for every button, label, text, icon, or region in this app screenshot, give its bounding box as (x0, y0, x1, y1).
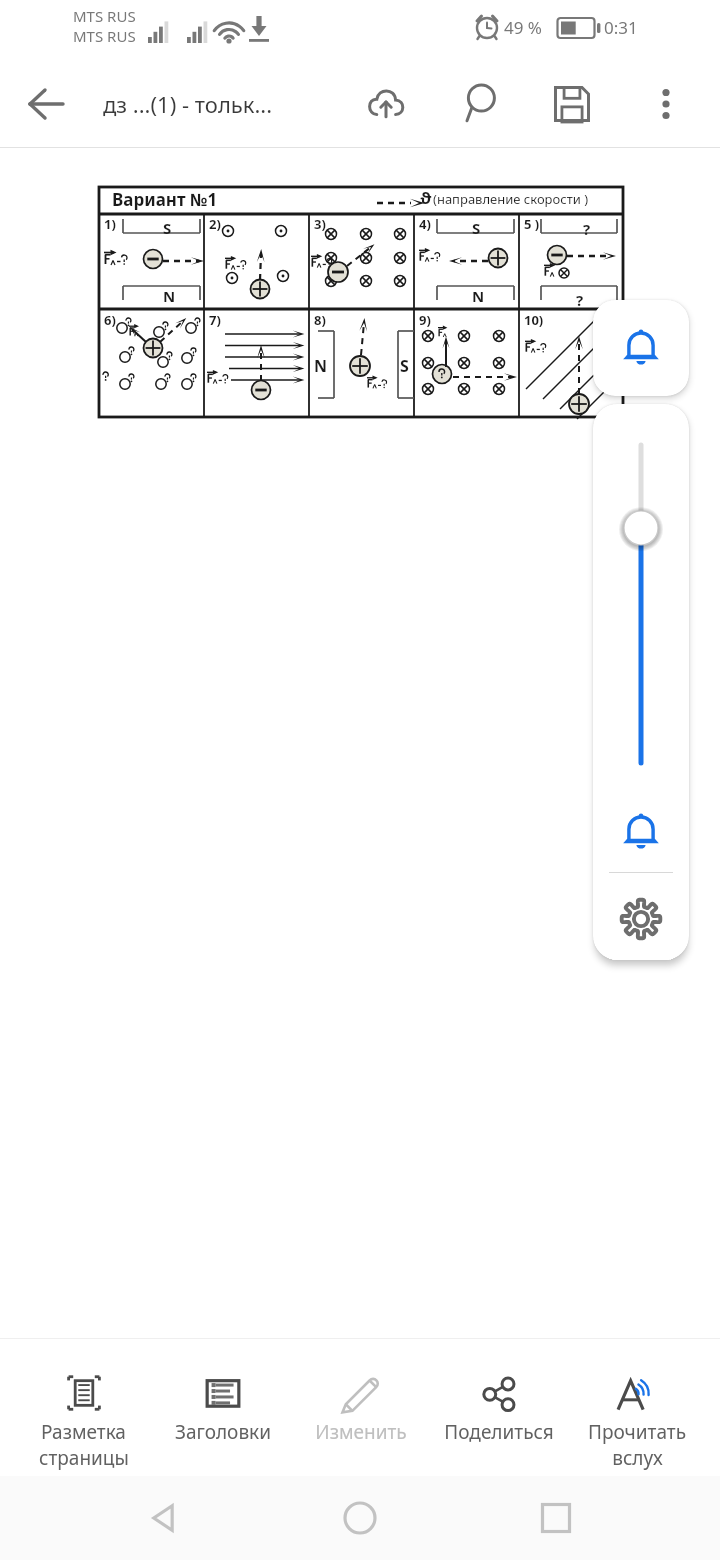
staticText: MTS RUS (73, 26, 136, 46)
staticText: Заголовки (175, 1419, 271, 1445)
staticText: N (163, 286, 176, 306)
staticText: MTS RUS (73, 6, 136, 26)
staticText: страницы (39, 1445, 129, 1471)
staticText: ? (576, 290, 584, 310)
staticText: S (400, 355, 409, 377)
staticText: 9) (419, 311, 431, 329)
button[interactable]: Sound settings (593, 882, 689, 956)
staticText: ? (583, 219, 591, 239)
staticText: Вариант №1 (112, 188, 218, 211)
staticText: S (472, 218, 481, 238)
button[interactable]: Home (328, 1486, 392, 1550)
staticText: 7) (209, 311, 221, 329)
staticText: 10) (524, 311, 544, 329)
staticText: 3) (314, 215, 326, 233)
button[interactable]: Back (132, 1486, 196, 1550)
staticText: Изменить (315, 1419, 407, 1445)
staticText: 6) (104, 311, 116, 329)
button[interactable]: Back (13, 71, 79, 137)
button[interactable]: Поделиться (430, 1338, 568, 1445)
staticText: S (163, 218, 172, 238)
staticText: дз ...(1) - тольк... (103, 89, 273, 119)
staticText: 49 % (504, 16, 542, 39)
staticText: ϑ (420, 187, 432, 209)
button[interactable]: More options (634, 72, 698, 136)
staticText: N (314, 355, 328, 377)
staticText: вслух (612, 1445, 663, 1471)
button[interactable]: Search (444, 69, 514, 139)
button[interactable]: Save (537, 69, 607, 139)
staticText: 0:31 (604, 16, 638, 39)
button[interactable]: Upload to cloud (351, 69, 421, 139)
staticText: Разметка (41, 1419, 126, 1445)
staticText: (направление скорости ) (433, 190, 589, 208)
button[interactable]: Прочитать (568, 1338, 706, 1471)
staticText: Прочитать (588, 1419, 686, 1445)
button[interactable]: Заголовки (153, 1338, 292, 1445)
staticText: 4) (419, 215, 431, 233)
button[interactable]: Recent apps (524, 1486, 588, 1550)
staticText: Поделиться (444, 1419, 554, 1445)
staticText: 5 ) (524, 215, 540, 233)
staticText: N (472, 286, 485, 306)
staticText: 2) (209, 215, 221, 233)
button[interactable]: Notifications (593, 800, 689, 864)
button[interactable]: Изменить (292, 1338, 430, 1445)
staticText: 8) (314, 311, 326, 329)
button[interactable]: Ringer mode (593, 300, 689, 396)
staticText: 1) (104, 215, 116, 233)
button[interactable]: Разметка (14, 1338, 153, 1471)
